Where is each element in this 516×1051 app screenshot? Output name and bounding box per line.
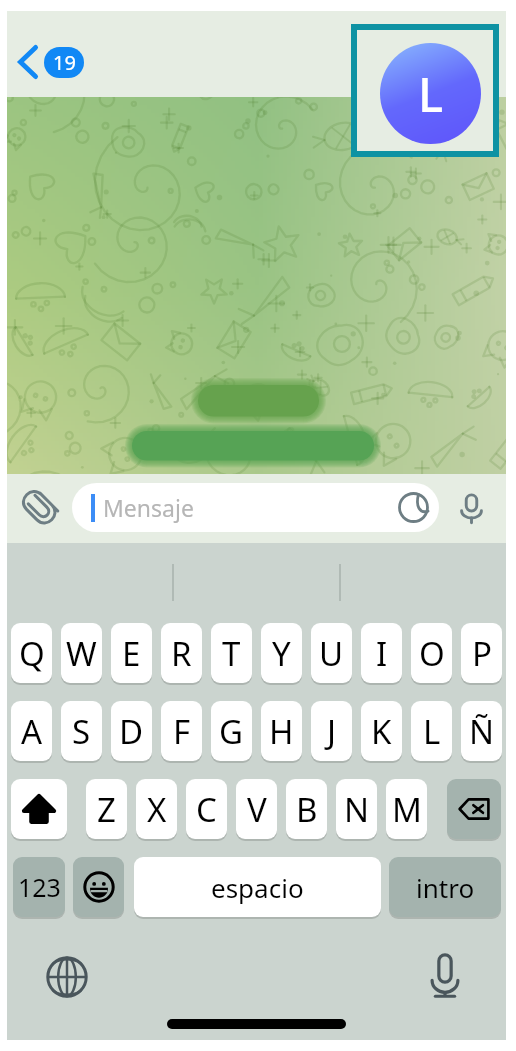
button[interactable]: P [461, 623, 502, 683]
button[interactable]: Voice input [417, 948, 473, 1004]
staticText: Y [272, 631, 291, 676]
button[interactable]: C [186, 779, 227, 839]
button[interactable]: G [211, 701, 252, 761]
button[interactable]: R [161, 623, 202, 683]
staticText: Q [19, 631, 45, 676]
button[interactable]: Record voice message [444, 481, 498, 535]
button[interactable]: Stickers [387, 483, 439, 532]
button[interactable]: A [11, 701, 52, 761]
staticText: 19 [53, 49, 76, 76]
staticText: J [327, 709, 337, 754]
button[interactable]: Attach file [13, 481, 67, 535]
staticText: H [269, 709, 294, 754]
staticText: V [247, 787, 267, 832]
button[interactable]: T [211, 623, 252, 683]
staticText: 123 [18, 870, 61, 904]
staticText: Mensaje [103, 492, 194, 523]
button[interactable]: L [411, 701, 452, 761]
staticText: Ñ [469, 709, 495, 754]
button[interactable]: N [336, 779, 377, 839]
button[interactable]: Change keyboard language [39, 949, 95, 1005]
staticText: A [21, 709, 43, 754]
staticText: K [371, 709, 392, 754]
button[interactable]: Backspace [447, 779, 501, 839]
button[interactable]: E [111, 623, 152, 683]
button[interactable]: Shift [11, 779, 67, 839]
staticText: espacio [211, 870, 304, 905]
staticText: O [419, 631, 445, 676]
button[interactable]: O [411, 623, 452, 683]
button[interactable]: I [361, 623, 402, 683]
staticText: M [392, 787, 422, 832]
button[interactable] [125, 424, 381, 468]
staticText: N [344, 787, 370, 832]
button[interactable]: Q [11, 623, 52, 683]
staticText: intro [416, 870, 475, 905]
staticText: P [472, 631, 492, 676]
staticText: F [173, 709, 191, 754]
staticText: C [196, 787, 217, 832]
button[interactable]: B [286, 779, 327, 839]
staticText: U [319, 631, 344, 676]
button[interactable]: S [61, 701, 102, 761]
staticText: G [219, 709, 244, 754]
button[interactable]: V [236, 779, 277, 839]
button[interactable]: Back, 19 unread [13, 39, 89, 85]
staticText: I [376, 631, 388, 676]
button[interactable]: F [161, 701, 202, 761]
button[interactable]: espacio [134, 857, 381, 917]
button[interactable] [191, 378, 326, 424]
button[interactable]: Z [86, 779, 127, 839]
button[interactable]: D [111, 701, 152, 761]
staticText: W [66, 631, 97, 676]
staticText: B [296, 787, 318, 832]
staticText: S [72, 709, 91, 754]
button[interactable]: 123 [13, 857, 65, 917]
button[interactable]: Y [261, 623, 302, 683]
staticText: R [171, 631, 192, 676]
button[interactable]: H [261, 701, 302, 761]
button[interactable]: K [361, 701, 402, 761]
staticText: Z [97, 787, 116, 832]
button[interactable]: Emoji [73, 857, 124, 917]
staticText: L [423, 709, 441, 754]
staticText: L [418, 62, 444, 126]
staticText: X [147, 787, 167, 832]
button[interactable]: W [61, 623, 102, 683]
button[interactable]: X [136, 779, 177, 839]
button[interactable]: Mensaje [72, 483, 439, 532]
button[interactable]: M [386, 779, 427, 839]
button[interactable]: J [311, 701, 352, 761]
button[interactable]: intro [389, 857, 501, 917]
staticText: D [119, 709, 144, 754]
button[interactable]: U [311, 623, 352, 683]
button[interactable]: Profile photo [357, 30, 493, 151]
button[interactable]: Ñ [461, 701, 502, 761]
staticText: E [122, 631, 141, 676]
staticText: T [222, 631, 241, 676]
